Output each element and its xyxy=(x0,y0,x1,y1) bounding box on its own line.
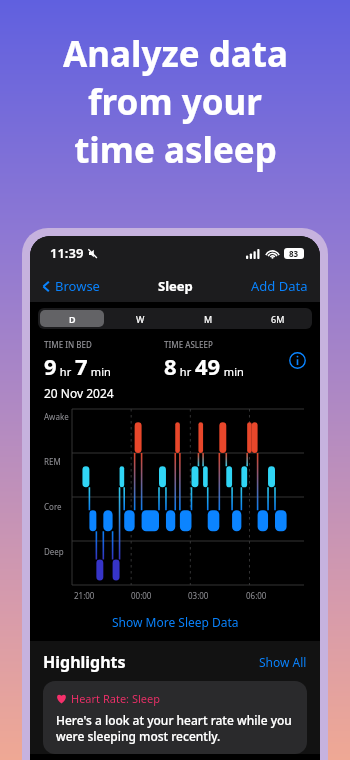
staticText: Highlights xyxy=(43,651,126,673)
staticText: TIME IN BED xyxy=(44,339,92,350)
staticText: 03:00 xyxy=(188,590,209,601)
staticText: from your xyxy=(88,78,262,126)
staticText: hr xyxy=(177,364,195,379)
button[interactable]: D xyxy=(40,310,104,327)
staticText: TIME ASLEEP xyxy=(164,339,213,350)
staticText: min xyxy=(88,364,111,379)
staticText: REM xyxy=(44,456,61,467)
staticText: 06:00 xyxy=(246,590,267,601)
button[interactable]: W xyxy=(108,310,172,327)
button[interactable]: Show More Sleep Data xyxy=(30,609,320,635)
staticText: 11:39 xyxy=(50,244,84,262)
button[interactable]: 6M xyxy=(245,310,310,327)
staticText: W xyxy=(136,313,145,325)
staticText: Analyze data xyxy=(63,30,288,78)
staticText: 7 xyxy=(75,351,88,381)
staticText: 20 Nov 2024 xyxy=(44,385,114,401)
staticText: hr xyxy=(57,364,75,379)
staticText: 49 xyxy=(195,351,221,381)
button[interactable]: Show All xyxy=(259,654,307,670)
button[interactable]: Heart Rate: Sleep xyxy=(43,681,307,754)
staticText: 6M xyxy=(271,313,285,325)
staticText: Here's a look at your heart rate while y… xyxy=(56,712,294,744)
staticText: time asleep xyxy=(74,126,277,174)
staticText: Awake xyxy=(44,411,69,422)
button[interactable]: M xyxy=(176,310,241,327)
button[interactable]: Browse xyxy=(40,277,100,295)
staticText: 9 xyxy=(44,351,57,381)
staticText: min xyxy=(221,364,244,379)
staticText: D xyxy=(69,313,76,325)
staticText: M xyxy=(204,313,213,325)
staticText: Add Data xyxy=(251,277,308,295)
staticText: Show More Sleep Data xyxy=(112,614,239,630)
staticText: 83 xyxy=(289,248,299,259)
button[interactable]: Add Data xyxy=(251,277,308,295)
staticText: 8 xyxy=(164,351,177,381)
staticText: Heart Rate: Sleep xyxy=(71,691,160,706)
staticText: 21:00 xyxy=(74,590,95,601)
staticText: Browse xyxy=(55,277,100,295)
staticText: Deep xyxy=(44,546,64,557)
staticText: Show All xyxy=(259,654,307,670)
staticText: Sleep xyxy=(158,277,193,295)
staticText: 00:00 xyxy=(131,590,152,601)
staticText: Core xyxy=(44,501,62,512)
